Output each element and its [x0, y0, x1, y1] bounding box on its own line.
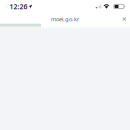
staticText: moel.go.kr — [51, 15, 79, 23]
button[interactable]: Stop loading — [119, 13, 130, 24]
staticText: 12:26 — [9, 2, 27, 11]
